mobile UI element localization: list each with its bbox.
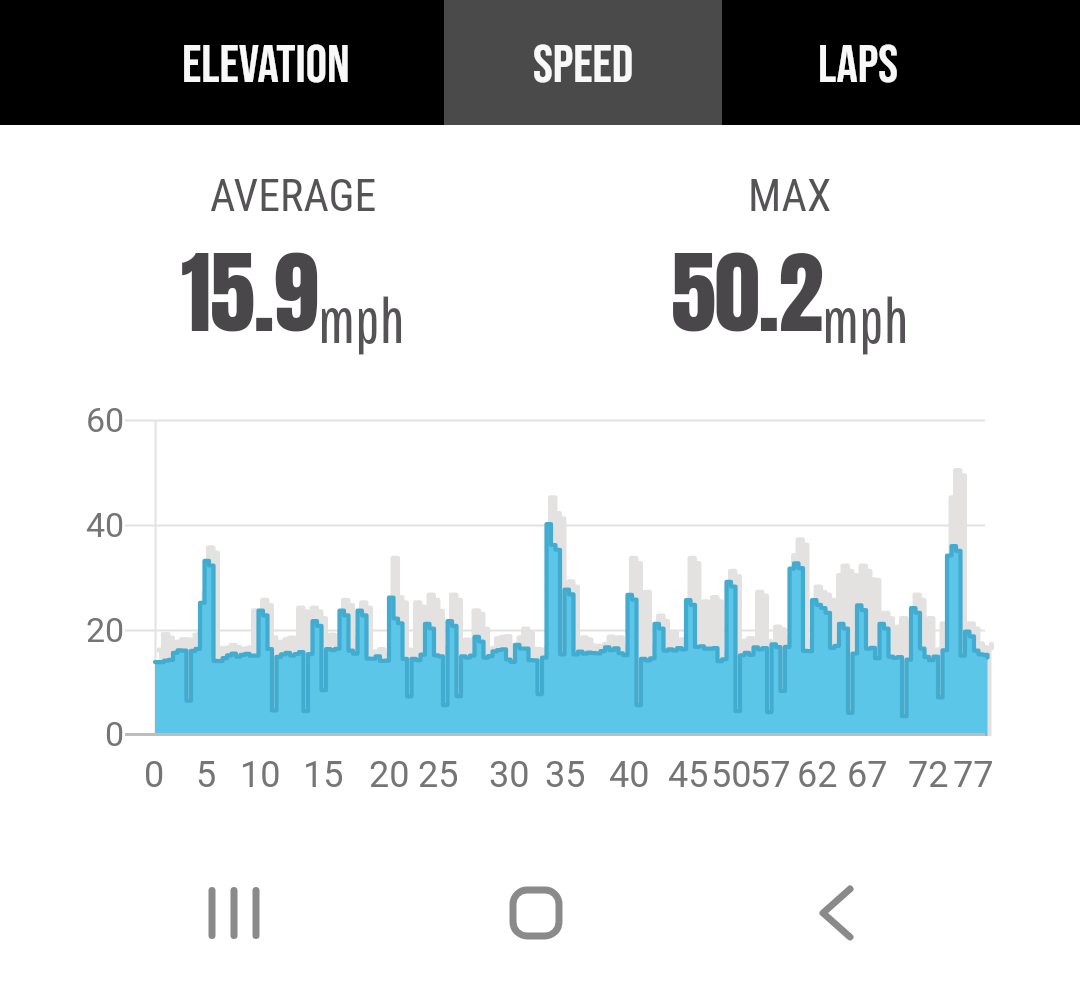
staticText: 0 bbox=[105, 714, 125, 754]
staticText: 62 bbox=[797, 754, 838, 796]
staticText: 40 bbox=[609, 754, 650, 796]
staticText: LAPS bbox=[818, 34, 899, 98]
button[interactable]: SPEED bbox=[444, 0, 722, 125]
staticText: 10 bbox=[240, 754, 281, 796]
staticText: AVERAGE bbox=[210, 170, 377, 222]
staticText: 15.9 bbox=[181, 224, 318, 361]
button[interactable]: ELEVATION bbox=[88, 0, 444, 125]
button[interactable]: LAPS bbox=[722, 0, 994, 125]
staticText: 30 bbox=[489, 754, 530, 796]
staticText: ELEVATION bbox=[182, 34, 350, 98]
staticText: 5 bbox=[196, 754, 217, 796]
button[interactable] bbox=[174, 863, 294, 963]
staticText: 57 bbox=[750, 754, 791, 796]
staticText: 20 bbox=[86, 610, 125, 650]
staticText: 20 bbox=[369, 754, 410, 796]
staticText: 77 bbox=[953, 754, 994, 796]
staticText: 0 bbox=[144, 754, 165, 796]
staticText: 67 bbox=[847, 754, 888, 796]
staticText: SPEED bbox=[533, 34, 634, 98]
staticText: MAX bbox=[748, 170, 832, 222]
staticText: 50.2 bbox=[671, 224, 822, 361]
staticText: 40 bbox=[86, 505, 125, 545]
button[interactable] bbox=[777, 863, 897, 963]
staticText: 50 bbox=[711, 754, 752, 796]
staticText: mph bbox=[822, 283, 909, 356]
staticText: 15 bbox=[303, 754, 344, 796]
staticText: 72 bbox=[908, 754, 949, 796]
staticText: 60 bbox=[86, 400, 125, 440]
staticText: 45 bbox=[668, 754, 709, 796]
staticText: 25 bbox=[418, 754, 459, 796]
button[interactable] bbox=[476, 863, 596, 963]
staticText: 35 bbox=[545, 754, 586, 796]
staticText: mph bbox=[318, 283, 405, 356]
